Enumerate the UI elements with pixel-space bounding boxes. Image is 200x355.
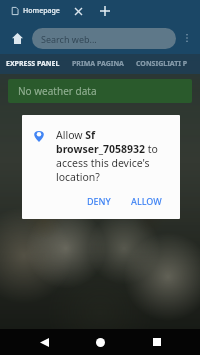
staticText: CONSIGLIATI P [136, 59, 188, 69]
button[interactable]: CONSIGLIATI P [130, 56, 194, 72]
button[interactable]: More options [176, 27, 198, 49]
button[interactable]: Home [6, 27, 28, 49]
staticText: ALLOW [131, 195, 162, 207]
button[interactable]: Close tab [70, 3, 86, 19]
staticText: PRIMA PAGINA [72, 59, 124, 69]
button[interactable]: Recent apps [144, 329, 170, 355]
button[interactable]: No weather data [8, 79, 192, 103]
staticText: EXPRESS PANEL [6, 59, 60, 69]
staticText: DENY [87, 195, 111, 207]
staticText: Allow Sf browser_7058932 to access this … [56, 128, 168, 184]
staticText: Search web... [41, 33, 97, 45]
button[interactable]: Search web... [32, 28, 176, 49]
button[interactable]: DENY [79, 190, 119, 212]
button[interactable]: Back [31, 329, 57, 355]
button[interactable]: ALLOW [123, 190, 170, 212]
button[interactable]: EXPRESS PANEL [0, 56, 66, 72]
button[interactable]: Home [87, 329, 113, 355]
button[interactable]: New tab [96, 2, 114, 20]
staticText: No weather data [18, 84, 97, 98]
staticText: Homepage [23, 6, 60, 16]
button[interactable]: PRIMA PAGINA [66, 56, 130, 72]
button[interactable]: Homepage [9, 4, 62, 18]
